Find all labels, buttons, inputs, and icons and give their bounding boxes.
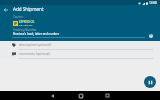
button[interactable]: Navigate up	[1, 5, 11, 15]
button[interactable]: Home	[76, 91, 85, 100]
staticText: description (optional)	[19, 43, 51, 47]
staticText: w o r l d w i d e	[19, 24, 33, 27]
staticText: EXPRESS CO.	[19, 20, 35, 24]
button[interactable]: description (optional)	[0, 41, 160, 49]
button[interactable]: Recent apps	[103, 91, 112, 100]
staticText: comments (optional)	[19, 52, 50, 56]
staticText: Brovince's book, letter and number	[13, 32, 60, 36]
staticText: Tracking Number	[13, 28, 37, 32]
button[interactable]: Save shipment	[144, 76, 156, 88]
staticText: 14:50	[149, 1, 158, 5]
button[interactable]: Scan barcode	[146, 31, 155, 40]
staticText: Add Shipment	[13, 6, 44, 12]
button[interactable]: comments (optional)	[0, 50, 160, 58]
staticText: Courier	[13, 15, 24, 19]
button[interactable]: Back	[48, 91, 57, 100]
